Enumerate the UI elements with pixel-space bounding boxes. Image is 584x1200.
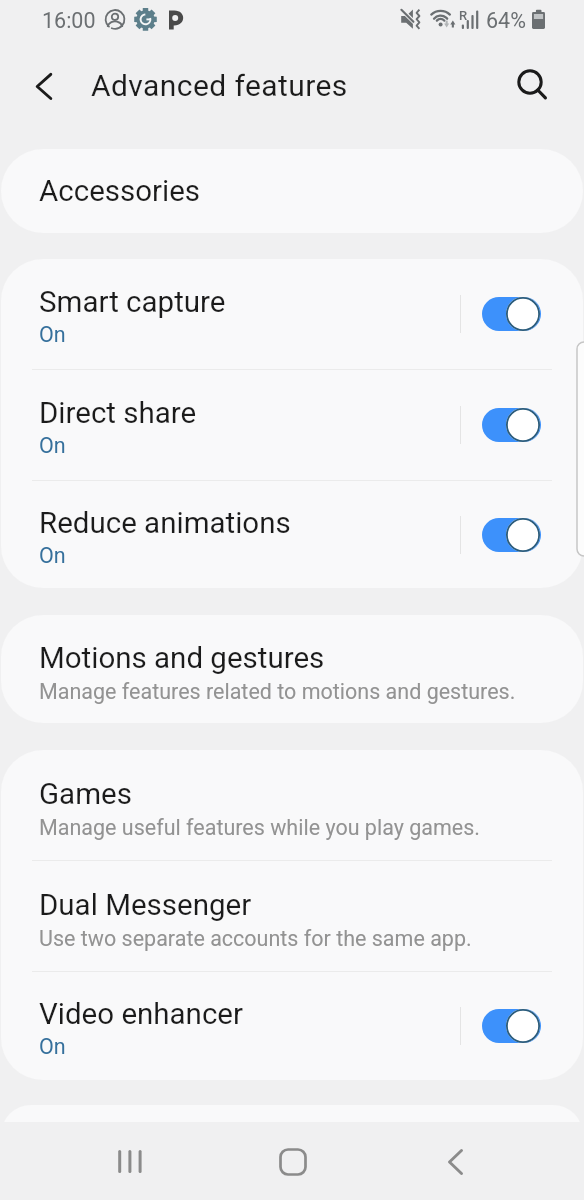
button[interactable]: Toggle Smart capture (482, 296, 541, 332)
button[interactable]: Search (506, 59, 554, 107)
staticText: Video enhancer (39, 997, 243, 1032)
button[interactable]: Toggle Reduce animations (482, 517, 541, 553)
staticText: Motions and gestures (39, 641, 325, 676)
staticText: Direct share (39, 396, 197, 431)
button[interactable]: Smart capture (1, 259, 583, 369)
staticText: Smart capture (39, 285, 226, 320)
button[interactable]: Motions and gestures (1, 615, 583, 723)
staticText: R (459, 8, 468, 23)
staticText: Use two separate accounts for the same a… (39, 926, 472, 951)
button[interactable]: Home (253, 1136, 333, 1188)
button[interactable]: Accessories (1, 149, 583, 233)
staticText: Manage features related to motions and g… (39, 679, 516, 704)
button[interactable]: Toggle Direct share (482, 407, 541, 443)
staticText: Manage useful features while you play ga… (39, 815, 480, 840)
staticText: Dual Messenger (39, 888, 252, 923)
staticText: Advanced features (91, 68, 348, 103)
staticText: On (39, 543, 66, 568)
button[interactable]: Dual Messenger (1, 861, 583, 971)
staticText: On (39, 1034, 66, 1059)
button[interactable]: Recent apps (89, 1136, 169, 1188)
staticText: On (39, 322, 66, 347)
staticText: 64% (486, 8, 526, 33)
button[interactable]: Back (416, 1136, 496, 1188)
staticText: Accessories (39, 174, 201, 209)
staticText: Reduce animations (39, 506, 291, 541)
button[interactable]: Toggle Video enhancer (482, 1008, 541, 1044)
staticText: Games (39, 777, 132, 812)
button[interactable]: Reduce animations (1, 481, 583, 588)
button[interactable]: Direct share (1, 370, 583, 480)
button[interactable]: Video enhancer (1, 972, 583, 1080)
staticText: On (39, 433, 66, 458)
button[interactable]: Back (13, 63, 61, 111)
staticText: 16:00 (42, 8, 96, 33)
button[interactable]: Games (1, 750, 583, 860)
